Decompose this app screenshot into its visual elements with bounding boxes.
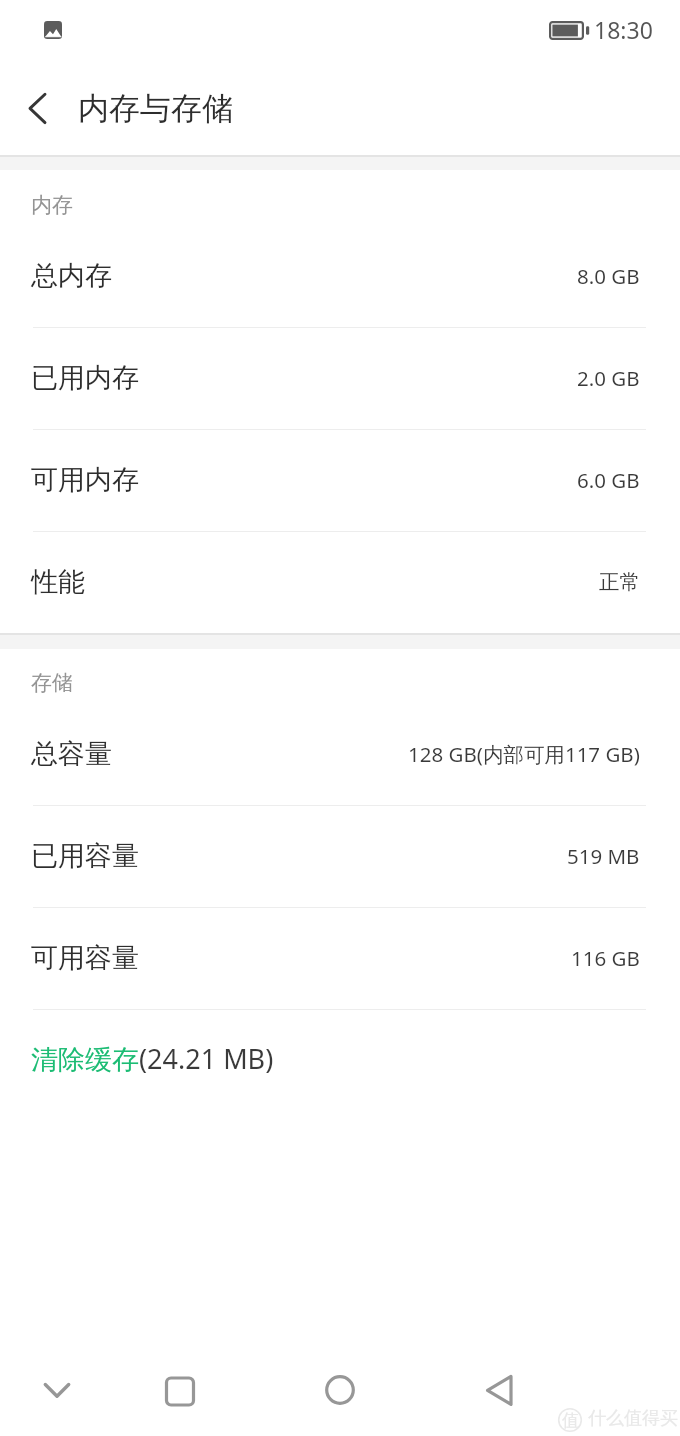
staticText: 性能 <box>31 565 85 599</box>
button[interactable]: Back <box>475 1366 523 1414</box>
staticText: 清除缓存(24.21 MB) <box>31 1040 274 1077</box>
staticText: 已用容量 <box>31 839 139 873</box>
staticText: 内存 <box>31 192 73 218</box>
button[interactable]: 清除缓存(24.21 MB) <box>0 1007 680 1109</box>
staticText: 什么值得买 <box>588 1407 678 1430</box>
staticText: 6.0 GB <box>577 466 640 494</box>
staticText: 可用容量 <box>31 941 139 975</box>
staticText: 2.0 GB <box>577 364 640 392</box>
staticText: 8.0 GB <box>577 262 640 290</box>
staticText: 128 GB(内部可用117 GB) <box>408 740 640 768</box>
staticText: 519 MB <box>567 842 640 870</box>
staticText: 已用内存 <box>31 361 139 395</box>
staticText: 总内存 <box>31 259 112 293</box>
button[interactable]: Recent apps <box>156 1366 204 1414</box>
button[interactable]: 性能 <box>0 531 680 633</box>
button[interactable]: 已用容量 <box>0 805 680 907</box>
staticText: 值 <box>562 1410 579 1431</box>
button[interactable]: 可用内存 <box>0 429 680 531</box>
staticText: 18:30 <box>594 14 653 45</box>
button[interactable]: Back <box>18 88 58 128</box>
button[interactable]: 可用容量 <box>0 907 680 1009</box>
staticText: 正常 <box>599 569 640 595</box>
button[interactable]: 总内存 <box>0 225 680 327</box>
staticText: 存储 <box>31 670 73 696</box>
staticText: 内存与存储 <box>78 89 233 128</box>
button[interactable]: Hide keyboard <box>33 1366 81 1414</box>
staticText: 116 GB <box>571 944 640 972</box>
staticText: 可用内存 <box>31 463 139 497</box>
staticText: 总容量 <box>31 737 112 771</box>
button[interactable]: 已用内存 <box>0 327 680 429</box>
button[interactable]: 总容量 <box>0 703 680 805</box>
button[interactable]: Home <box>316 1366 364 1414</box>
